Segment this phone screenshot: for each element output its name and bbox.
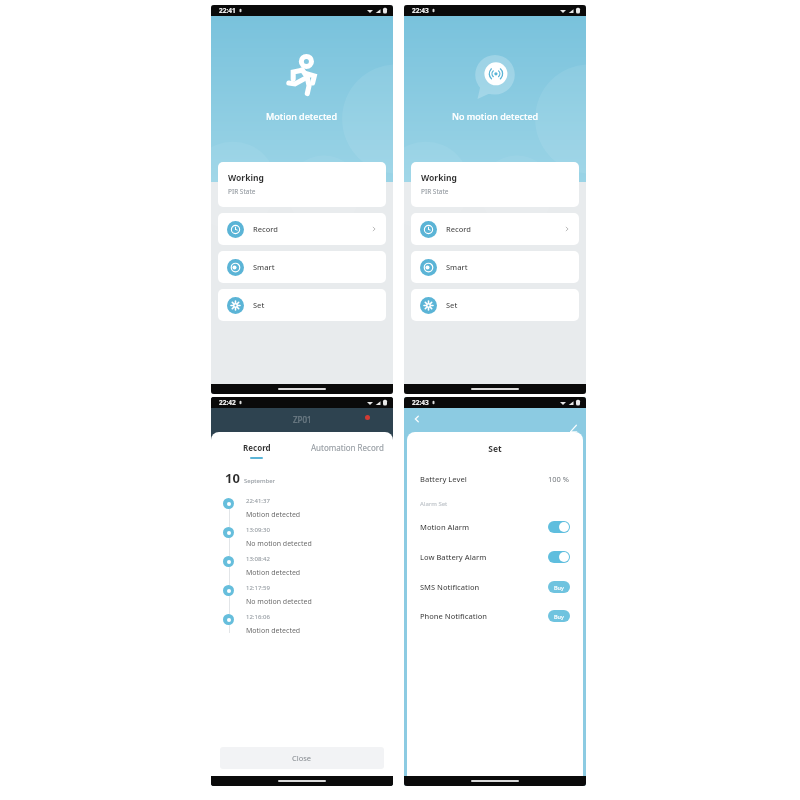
staticText: Smart <box>446 262 468 272</box>
staticText: 22:41:37 <box>246 497 270 505</box>
button[interactable]: Set <box>218 289 386 321</box>
staticText: Record <box>243 442 271 453</box>
staticText: Record <box>253 224 278 234</box>
staticText: Buy <box>554 584 564 591</box>
staticText: Close <box>292 753 312 763</box>
button[interactable]: Record <box>218 213 386 245</box>
staticText: 22:42 <box>219 398 236 407</box>
staticText: 100 % <box>548 474 570 484</box>
button[interactable]: Record <box>411 213 579 245</box>
button[interactable]: Record <box>211 442 302 459</box>
button[interactable]: Edit <box>564 419 582 437</box>
staticText: Working <box>228 172 264 184</box>
staticText: Motion detected <box>266 110 338 122</box>
staticText: 22:43 <box>412 6 429 15</box>
staticText: September <box>244 477 276 485</box>
button[interactable]: Smart <box>218 251 386 283</box>
staticText: Set <box>253 300 265 310</box>
staticText: No motion detected <box>246 539 312 549</box>
button[interactable]: Buy <box>548 581 570 593</box>
button[interactable]: Close <box>220 747 384 769</box>
button[interactable]: Smart <box>411 251 579 283</box>
button[interactable]: Automation Record <box>302 442 393 459</box>
staticText: Buy <box>554 613 564 620</box>
staticText: 10 <box>225 469 240 487</box>
staticText: PIR State <box>228 187 256 196</box>
button[interactable]: Set <box>411 289 579 321</box>
button[interactable]: Working <box>218 162 386 207</box>
staticText: No motion detected <box>246 597 312 607</box>
staticText: Working <box>421 172 457 184</box>
staticText: 12:17:59 <box>246 584 270 592</box>
staticText: 13:08:42 <box>246 555 270 563</box>
staticText: 22:41 <box>219 6 236 15</box>
staticText: No motion detected <box>452 110 539 122</box>
button[interactable]: Buy <box>548 610 570 622</box>
button[interactable]: Low Battery Alarm <box>407 549 583 565</box>
staticText: PIR State <box>421 187 449 196</box>
staticText: Set <box>446 300 458 310</box>
staticText: Motion Alarm <box>420 522 470 532</box>
staticText: Motion detected <box>246 510 301 520</box>
staticText: Motion detected <box>246 626 301 636</box>
staticText: Automation Record <box>311 442 384 453</box>
staticText: 13:09:30 <box>246 526 270 534</box>
staticText: Alarm Set <box>420 500 448 508</box>
staticText: ZP01 <box>293 414 312 425</box>
staticText: Smart <box>253 262 275 272</box>
staticText: Low Battery Alarm <box>420 552 487 562</box>
staticText: 12:16:06 <box>246 613 270 621</box>
button[interactable]: Back <box>407 409 427 429</box>
button[interactable]: Working <box>411 162 579 207</box>
staticText: Record <box>446 224 471 234</box>
staticText: Motion detected <box>246 568 301 578</box>
staticText: Battery Level <box>420 474 467 484</box>
staticText: Set <box>407 443 583 455</box>
staticText: Phone Notification <box>420 611 487 621</box>
button[interactable]: Motion Alarm <box>407 519 583 535</box>
button[interactable]: Battery Level <box>407 472 583 486</box>
staticText: 22:43 <box>412 398 429 407</box>
staticText: SMS Notification <box>420 582 480 592</box>
